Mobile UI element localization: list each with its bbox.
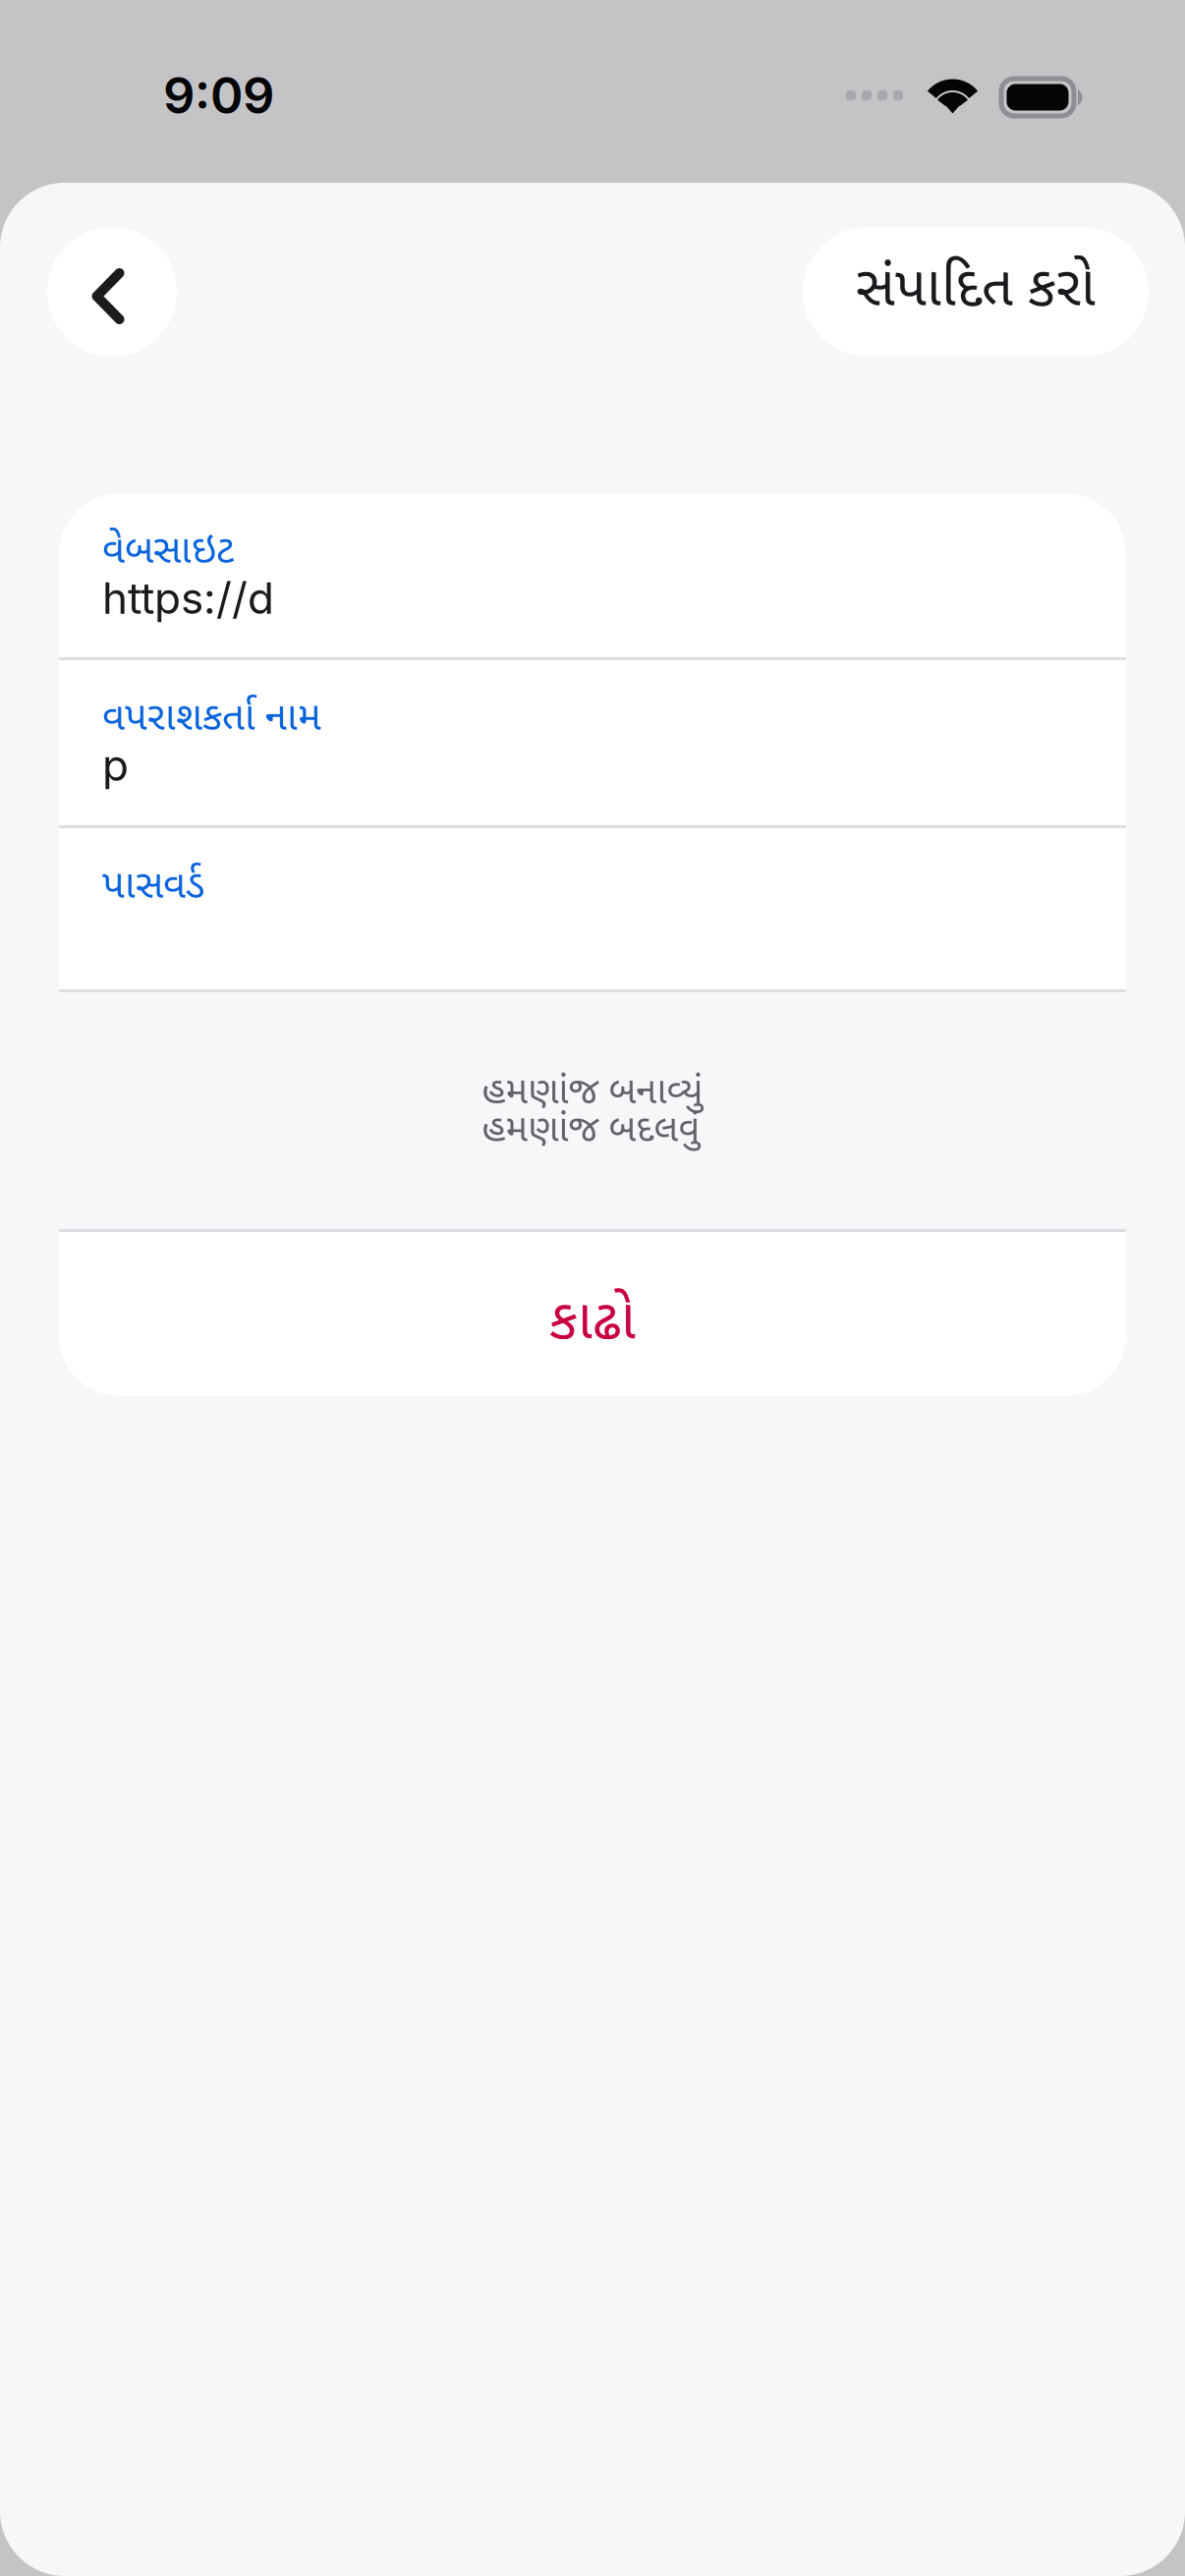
button[interactable]: સંપાદિત કરો bbox=[803, 227, 1149, 357]
button[interactable]: પાસવર્ડ bbox=[59, 828, 1126, 989]
staticText: સંપાદિત કરો bbox=[856, 256, 1096, 328]
button[interactable]: વપરાશકર્તા નામ bbox=[59, 660, 1126, 825]
staticText: હમણાંજ બનાવ્યું હમણાંજ બદલવું bbox=[482, 1070, 703, 1156]
staticText: વપરાશકર્તા નામ bbox=[102, 695, 321, 746]
staticText: https://d bbox=[102, 572, 274, 624]
staticText: વેબસાઇટ bbox=[102, 528, 234, 579]
staticText: p bbox=[102, 739, 129, 791]
staticText: કાઢો bbox=[549, 1289, 636, 1361]
button[interactable]: Back bbox=[47, 227, 177, 357]
button[interactable]: વેબસાઇટ bbox=[59, 493, 1126, 657]
staticText: પાસવર્ડ bbox=[102, 863, 204, 914]
staticText: 9:09 bbox=[163, 65, 274, 125]
button[interactable]: કાઢો bbox=[59, 1232, 1126, 1396]
